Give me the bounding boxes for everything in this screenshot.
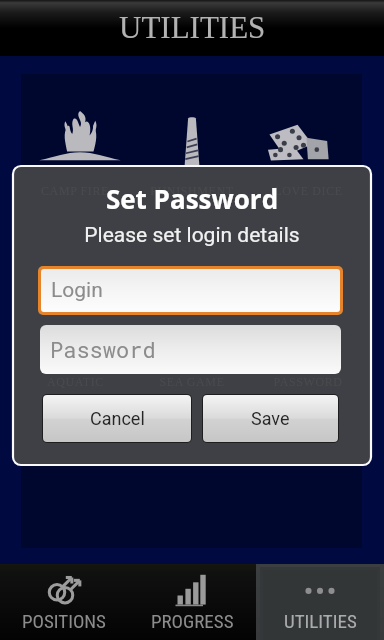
staticText: Set Password	[12, 181, 372, 216]
staticText: UTILITIES	[119, 10, 266, 44]
staticText: CAMP FIRE	[41, 184, 109, 197]
staticText: PASSWORD	[273, 375, 343, 388]
staticText: PROGRESS	[151, 610, 234, 632]
staticText: AQUATIC	[47, 375, 104, 388]
button[interactable]: Save	[203, 395, 338, 442]
staticText: UTILITIES	[284, 610, 357, 632]
staticText: Password	[50, 335, 156, 364]
staticText: POSITIONS	[22, 610, 106, 632]
button[interactable]: POSITIONS	[0, 564, 128, 640]
button[interactable]: PROGRESS	[128, 564, 256, 640]
staticText: Login	[51, 278, 103, 303]
staticText: Please set login details	[12, 223, 372, 248]
button[interactable]: Password	[40, 325, 341, 374]
staticText: Save	[251, 408, 290, 429]
button[interactable]: Cancel	[43, 395, 191, 442]
staticText: LOVE DICE	[274, 184, 343, 197]
staticText: PUNISHMENT	[150, 184, 234, 197]
button[interactable]: Login	[41, 269, 340, 312]
staticText: SEA GAME	[159, 375, 225, 388]
staticText: Cancel	[90, 408, 145, 429]
button[interactable]: UTILITIES	[256, 564, 384, 640]
